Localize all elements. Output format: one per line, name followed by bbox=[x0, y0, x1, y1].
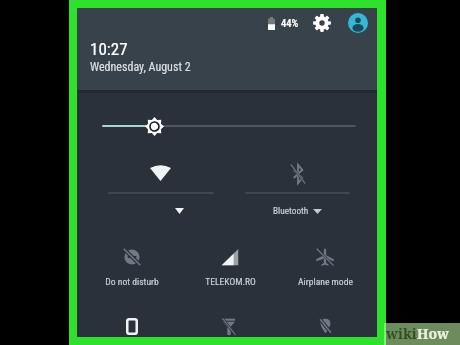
button[interactable]: User account bbox=[346, 11, 370, 35]
staticText: Airplane mode bbox=[298, 276, 353, 287]
staticText: TELEKOM.RO bbox=[205, 276, 256, 287]
button[interactable]: TELEKOM.RO bbox=[183, 241, 277, 297]
button[interactable]: Settings bbox=[310, 11, 334, 35]
staticText: Do not disturb bbox=[105, 276, 159, 287]
button[interactable]: Flashlight bbox=[182, 311, 276, 341]
staticText: 10:27 bbox=[90, 39, 128, 59]
staticText: wiki bbox=[386, 324, 417, 343]
staticText: How bbox=[417, 324, 450, 343]
button[interactable]: Location bbox=[278, 311, 372, 341]
staticText: 44% bbox=[281, 17, 299, 29]
button[interactable]: Airplane mode bbox=[278, 241, 372, 297]
staticText: Bluetooth bbox=[273, 205, 309, 216]
button[interactable]: Auto rotate bbox=[85, 311, 179, 341]
staticText: Wednesday, August 2 bbox=[90, 60, 191, 74]
button[interactable]: Brightness bbox=[95, 114, 363, 140]
button[interactable]: Do not disturb bbox=[85, 241, 179, 297]
button[interactable]: Wi-Fi bbox=[108, 157, 214, 224]
button[interactable]: Bluetooth bbox=[245, 157, 350, 224]
